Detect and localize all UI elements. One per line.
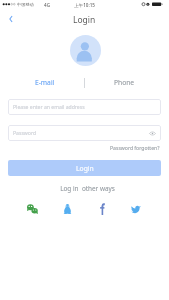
button[interactable]: QQ login: [61, 203, 73, 215]
staticText: Login: [73, 14, 96, 26]
button[interactable]: Show password: [149, 130, 156, 137]
button[interactable]: Profile picture: [70, 35, 101, 66]
staticText: Phone: [114, 78, 135, 87]
staticText: Login: [76, 164, 94, 173]
staticText: 4G: [44, 2, 50, 8]
button[interactable]: Please enter an email address: [8, 99, 161, 115]
button[interactable]: Phone: [85, 77, 163, 88]
button[interactable]: Facebook login: [96, 203, 108, 215]
staticText: 上午10:15: [74, 2, 95, 8]
staticText: Password forgotten?: [110, 145, 160, 152]
staticText: Password: [13, 130, 37, 137]
staticText: E-mail: [35, 78, 55, 87]
button[interactable]: Twitter login: [130, 203, 142, 215]
staticText: Log in other ways: [3, 184, 169, 193]
button[interactable]: Back: [4, 12, 18, 26]
button[interactable]: Password: [8, 125, 161, 141]
button[interactable]: Login: [8, 160, 161, 176]
staticText: Please enter an email address: [13, 104, 85, 111]
button[interactable]: WeChat login: [26, 203, 38, 215]
button[interactable]: E-mail: [6, 77, 84, 88]
staticText: 中国移动: [17, 2, 34, 7]
button[interactable]: Password forgotten?: [110, 145, 160, 152]
